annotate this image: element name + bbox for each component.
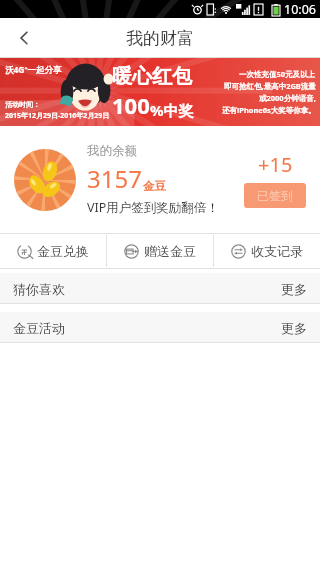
staticText: 金豆活动 bbox=[13, 320, 65, 336]
button[interactable]: 金豆活动 bbox=[0, 312, 320, 343]
staticText: 一次性充值50元及以上 bbox=[239, 69, 316, 79]
button[interactable]: Promotion banner bbox=[0, 58, 320, 126]
staticText: 赠送金豆 bbox=[144, 243, 196, 259]
staticText: 沃4G⁺一起分享 bbox=[5, 64, 62, 76]
staticText: 3157 bbox=[87, 162, 142, 195]
staticText: 暖心红包 bbox=[112, 64, 192, 89]
button[interactable]: 收支记录 bbox=[214, 233, 320, 269]
staticText: 2015年12月29日-2016年2月29日 bbox=[5, 111, 110, 121]
staticText: 活动时间： bbox=[5, 100, 40, 109]
button[interactable]: 已签到 bbox=[244, 183, 306, 208]
button[interactable]: 赠送金豆 bbox=[107, 233, 213, 269]
staticText: +15 bbox=[258, 151, 293, 178]
staticText: VIP用户签到奖励翻倍！ bbox=[87, 199, 219, 216]
staticText: 猜你喜欢 bbox=[13, 281, 65, 297]
staticText: 10:06 bbox=[284, 1, 316, 18]
staticText: 更多 bbox=[281, 281, 307, 297]
button[interactable]: 猜你喜欢 bbox=[0, 273, 320, 304]
staticText: %中奖 bbox=[150, 100, 194, 120]
staticText: 更多 bbox=[281, 320, 307, 336]
staticText: 即可抢红包,最高中2GB流量 bbox=[224, 81, 316, 91]
staticText: 金豆兑换 bbox=[37, 243, 89, 259]
staticText: 金豆 bbox=[143, 179, 166, 193]
staticText: 100 bbox=[112, 90, 150, 120]
staticText: 我的财富 bbox=[126, 28, 194, 49]
staticText: 已签到 bbox=[257, 188, 293, 203]
button[interactable]: Back bbox=[0, 18, 48, 58]
staticText: 还有iPhone6s大奖等你拿。 bbox=[222, 105, 316, 115]
staticText: 收支记录 bbox=[251, 243, 303, 259]
staticText: 我的余额 bbox=[87, 143, 137, 159]
staticText: 或2000分钟语音, bbox=[259, 93, 316, 103]
button[interactable]: 金豆兑换 bbox=[0, 233, 106, 269]
